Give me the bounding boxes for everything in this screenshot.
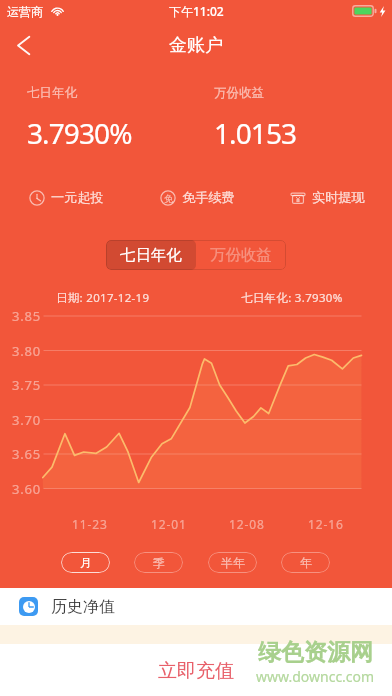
staticText: 七日年化 [27,85,77,101]
button[interactable]: 实时提现 [288,187,367,208]
staticText: 12-08 [229,516,265,532]
staticText: 免手续费 [182,189,235,206]
staticText: 万份收益 [210,245,272,265]
button[interactable]: 年 [281,552,330,573]
staticText: 3.60 [12,480,41,498]
button[interactable]: 半年 [208,552,257,573]
button[interactable]: 一元起投 [27,187,106,208]
staticText: 万份收益 [214,85,264,101]
staticText: 年 [300,555,312,570]
staticText: 11-23 [72,516,108,532]
staticText: 一元起投 [51,189,104,206]
staticText: 半年 [221,555,245,570]
staticText: 七日年化 [120,245,182,265]
button[interactable]: 历史净值 [0,588,392,625]
button[interactable]: 立即充值 [0,644,392,696]
staticText: 实时提现 [312,189,365,206]
staticText: 日期: 2017-12-19 [56,290,150,306]
staticText: 历史净值 [51,597,115,617]
staticText: 运营商 [7,4,43,19]
staticText: 3.75 [12,376,41,394]
button[interactable]: 免 [158,187,237,208]
staticText: 3.65 [12,445,41,463]
button[interactable]: 月 [61,552,110,573]
staticText: 3.70 [12,411,41,429]
button[interactable]: Back [0,23,46,67]
staticText: 免 [164,193,173,204]
staticText: 绿色资源网 [258,638,373,667]
button[interactable]: 季 [134,552,183,573]
staticText: 3.85 [12,307,41,325]
staticText: 季 [153,555,165,570]
staticText: 月 [80,555,92,570]
button[interactable]: 万份收益 [196,240,286,270]
staticText: 立即充值 [158,659,234,683]
staticText: 3.80 [12,342,41,360]
staticText: 金账户 [169,34,223,57]
staticText: 12-16 [308,516,344,532]
staticText: 12-01 [151,516,187,532]
staticText: 3.7930% [27,114,132,152]
staticText: www.downcc.com [256,667,375,686]
staticText: 下午11:02 [169,3,224,19]
button[interactable]: 七日年化 [106,240,196,270]
staticText: 七日年化: 3.7930% [241,290,343,306]
staticText: 1.0153 [214,114,297,152]
